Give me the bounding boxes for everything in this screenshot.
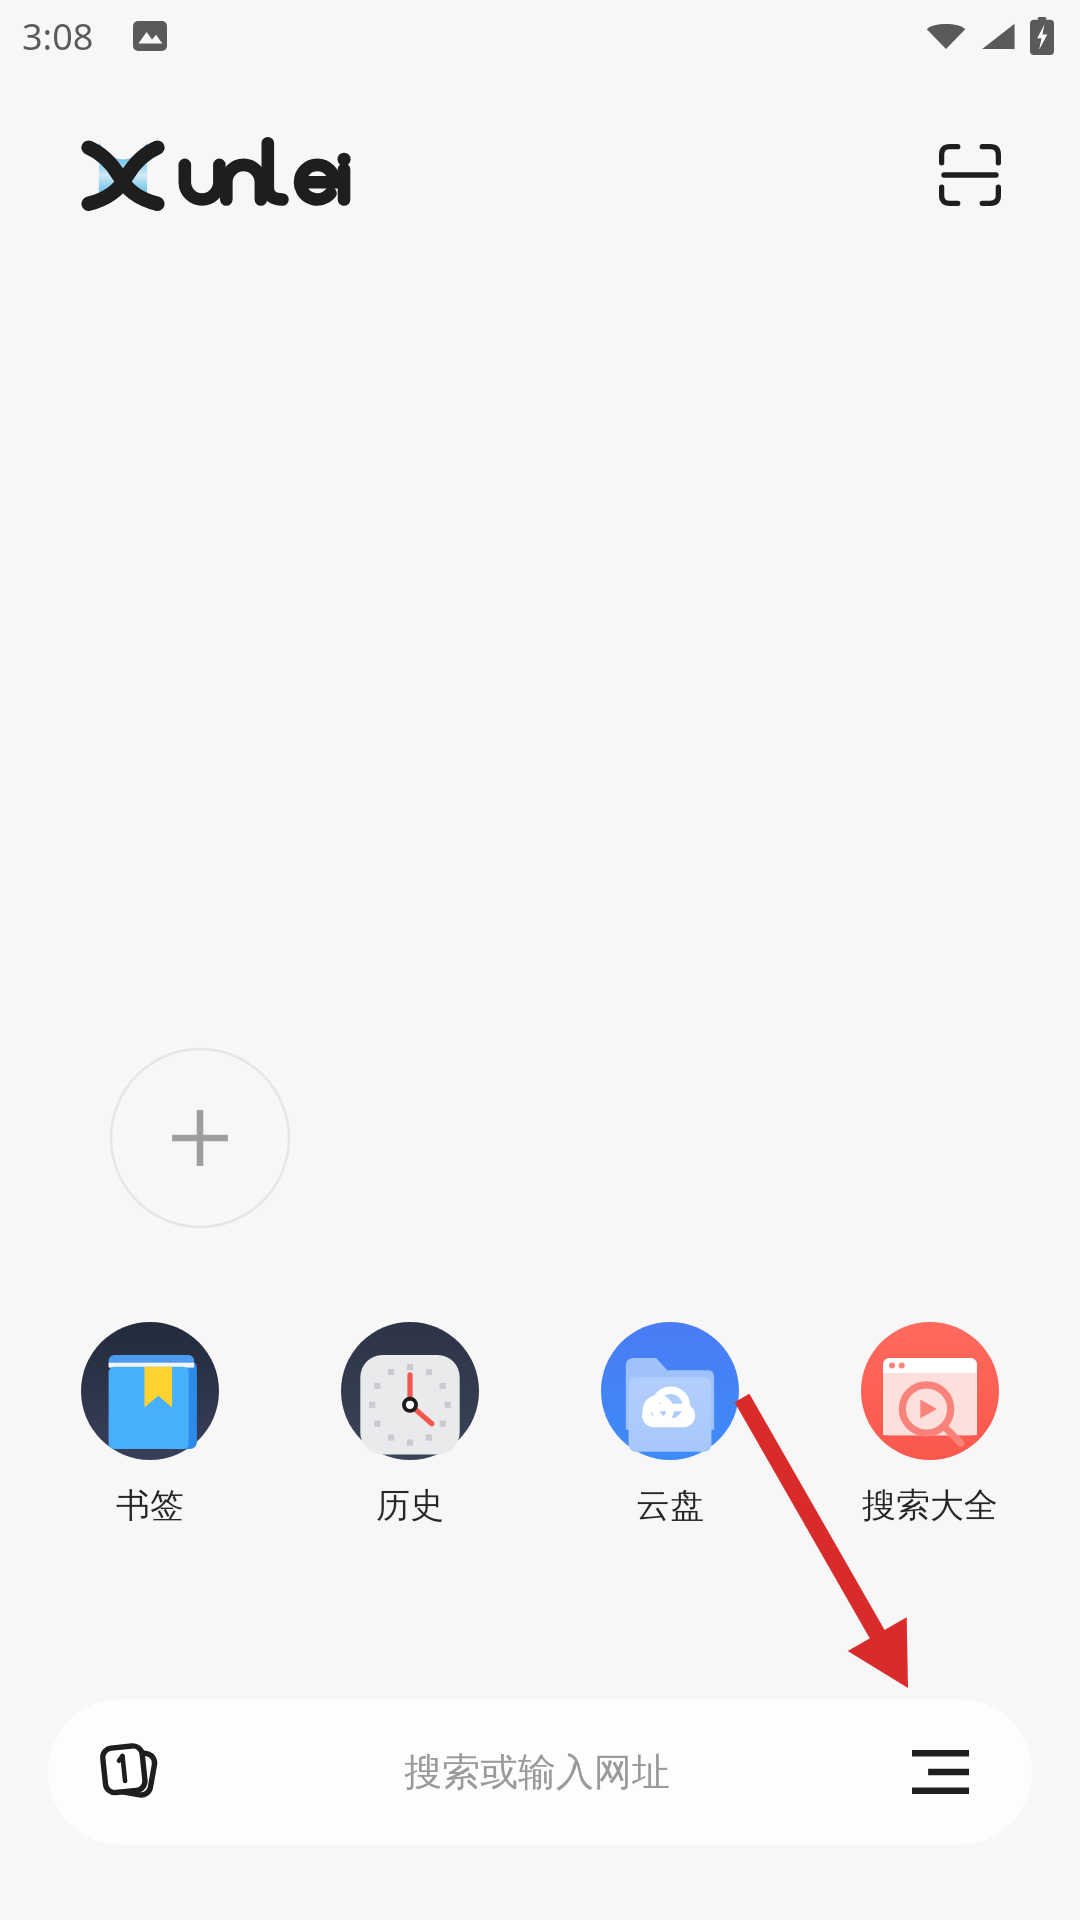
staticText: 云盘 [636, 1484, 704, 1527]
staticText: 书签 [116, 1484, 184, 1527]
staticText: 历史 [376, 1484, 444, 1527]
button[interactable]: 搜索大全 [840, 1322, 1020, 1527]
button[interactable]: Add shortcut [110, 1048, 290, 1228]
button[interactable]: Tabs, 1 open [88, 1729, 174, 1815]
button[interactable]: 云盘 [580, 1322, 760, 1527]
staticText: 3:08 [22, 12, 94, 61]
staticText: 搜索或输入网址 [404, 1748, 670, 1796]
button[interactable]: 历史 [320, 1322, 500, 1527]
button[interactable]: Menu [900, 1729, 986, 1815]
button[interactable]: Scan QR code [930, 135, 1010, 215]
button[interactable]: Tabs, 1 open [48, 1699, 1032, 1845]
staticText: 搜索大全 [862, 1484, 998, 1527]
button[interactable]: 书签 [60, 1322, 240, 1527]
button[interactable] [80, 139, 436, 211]
